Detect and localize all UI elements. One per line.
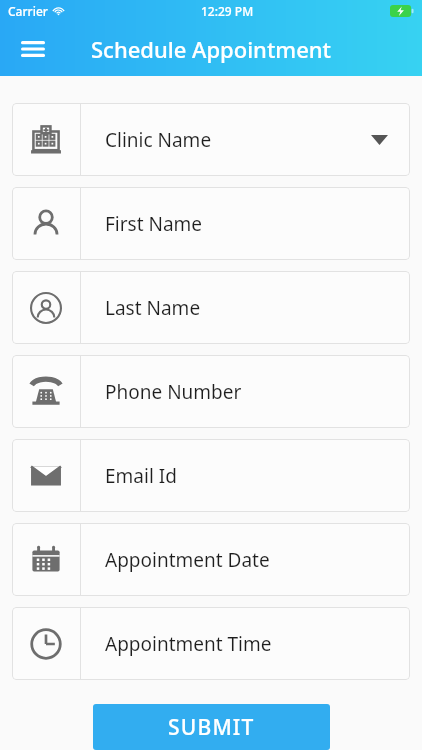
staticText: First Name [105,211,410,237]
staticText: 12:29 PM [201,3,254,19]
staticText: Appointment Date [105,547,410,573]
staticText: Clinic Name [105,127,371,153]
staticText: Email Id [105,463,410,489]
button[interactable]: SUBMIT [93,704,330,750]
button[interactable]: Last Name [12,271,410,344]
staticText: Schedule Appointment [91,34,332,64]
button[interactable]: Menu [14,30,52,68]
button[interactable]: Appointment Date [12,523,410,596]
button[interactable]: Phone Number [12,355,410,428]
button[interactable]: Clinic Name [12,103,410,176]
staticText: Last Name [105,295,410,321]
staticText: Carrier [8,3,48,19]
button[interactable]: Appointment Time [12,607,410,680]
staticText: Phone Number [105,379,410,405]
button[interactable]: Email Id [12,439,410,512]
staticText: SUBMIT [168,713,255,742]
staticText: Appointment Time [105,631,410,657]
button[interactable]: First Name [12,187,410,260]
